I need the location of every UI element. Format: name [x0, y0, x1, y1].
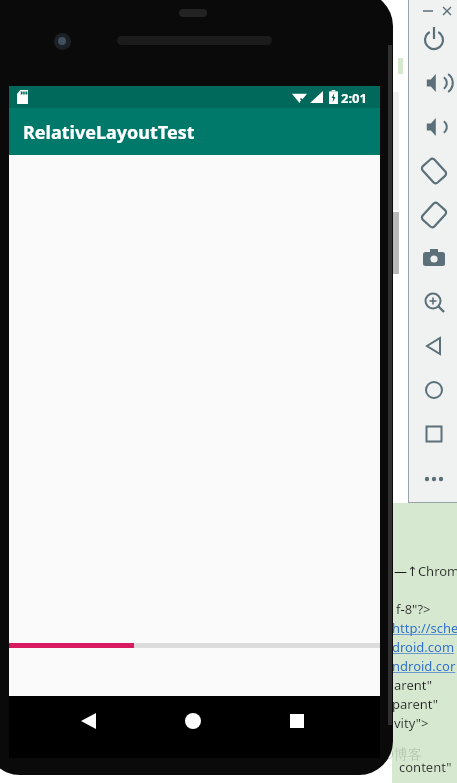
- staticText: f-8"?>: [396, 600, 431, 618]
- button[interactable]: Volume up: [419, 68, 449, 98]
- button[interactable]: Home: [172, 700, 214, 742]
- button[interactable]: Recent apps: [276, 700, 318, 742]
- button[interactable]: RelativeLayoutTest: [9, 108, 380, 155]
- button[interactable]: Home: [419, 375, 449, 405]
- staticText: droid.com: [392, 638, 455, 656]
- staticText: @51CTO博客: [338, 744, 422, 763]
- staticText: parent": [392, 695, 439, 713]
- button[interactable]: Minimize: [419, 2, 437, 20]
- button[interactable]: Volume down: [419, 112, 449, 142]
- button[interactable]: Back: [419, 331, 449, 361]
- staticText: —↑Chrom: [394, 562, 457, 580]
- staticText: RelativeLayoutTest: [23, 120, 195, 145]
- staticText: 2:01: [341, 89, 367, 107]
- button[interactable]: Zoom: [419, 287, 449, 317]
- button[interactable]: Overview: [419, 419, 449, 449]
- staticText: content": [399, 758, 452, 776]
- staticText: ndroid.cor: [392, 657, 456, 675]
- button[interactable]: Power: [419, 24, 449, 54]
- staticText: http://sche: [392, 619, 457, 637]
- button[interactable]: More options: [419, 464, 449, 494]
- button[interactable]: Rotate right: [419, 200, 449, 230]
- button[interactable]: Screenshot: [419, 243, 449, 273]
- button[interactable]: Back: [68, 700, 110, 742]
- button[interactable]: Rotate left: [419, 156, 449, 186]
- staticText: vity">: [394, 714, 429, 732]
- staticText: arent": [394, 676, 433, 694]
- button[interactable]: Close: [438, 2, 456, 20]
